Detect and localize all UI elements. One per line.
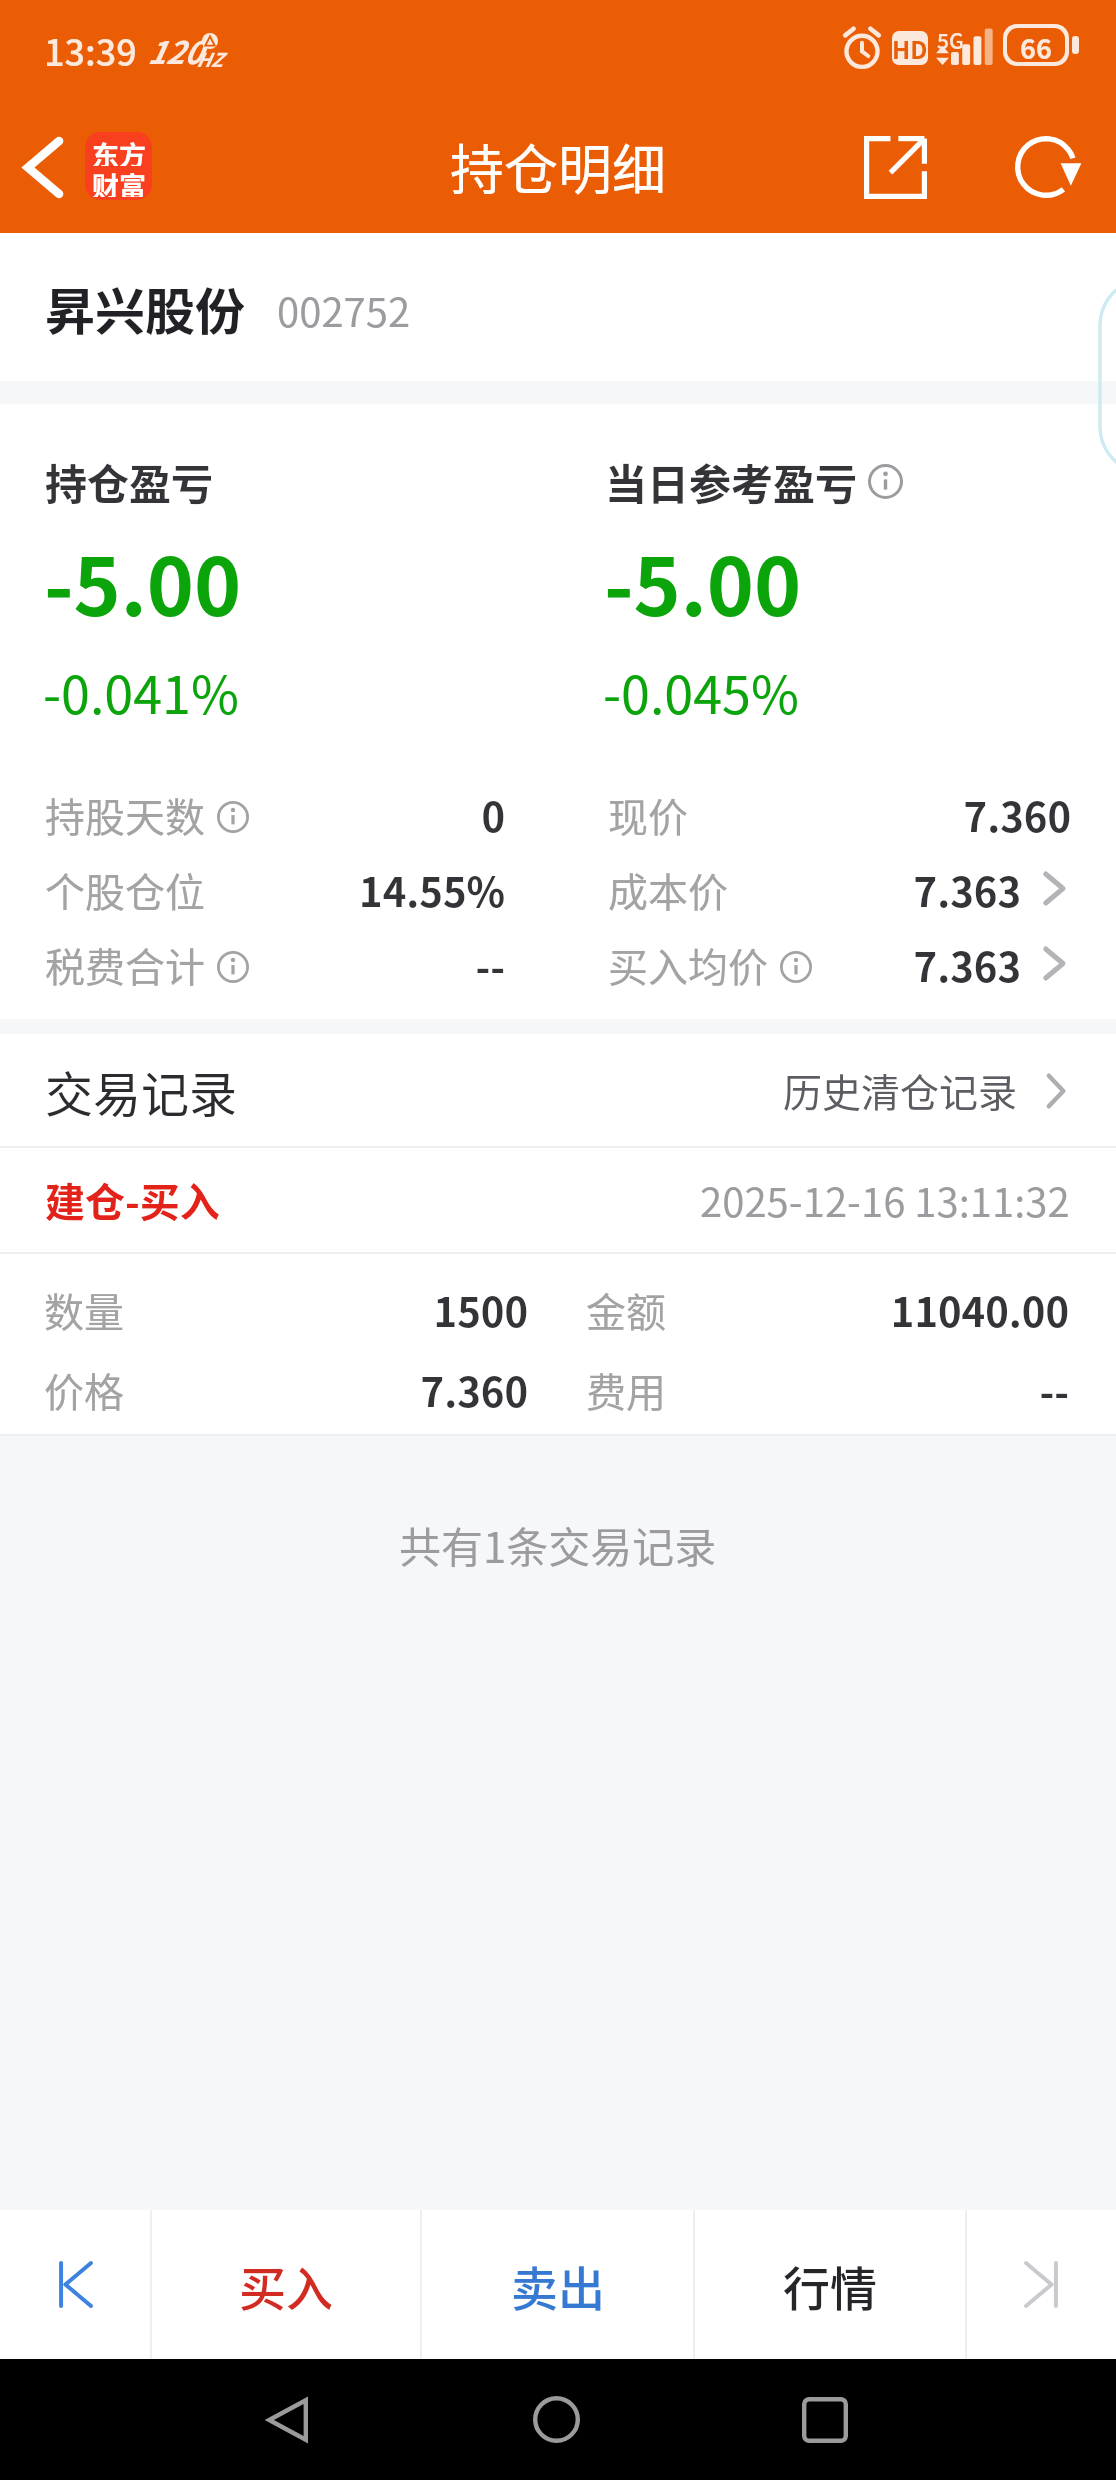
- staticText: 交易记录: [45, 1056, 238, 1126]
- staticText: 5G: [937, 25, 964, 55]
- staticText: 持仓明细: [450, 127, 666, 205]
- staticText: 7.360: [228, 1361, 528, 1419]
- staticText: 14.55%: [205, 861, 505, 919]
- staticText: 税费合计: [45, 936, 205, 994]
- staticText: -5.00: [604, 523, 802, 639]
- staticText: 成本价: [608, 861, 728, 919]
- button[interactable]: Refresh: [983, 104, 1109, 230]
- staticText: 120: [147, 28, 202, 73]
- staticText: 7.363: [721, 861, 1021, 919]
- staticText: 建仓-买入: [45, 1171, 220, 1229]
- staticText: 买入均价: [608, 936, 768, 994]
- staticText: 持仓盈亏: [45, 451, 214, 512]
- staticText: HZ: [196, 45, 223, 73]
- staticText: 个股仓位: [45, 861, 205, 919]
- button[interactable]: 历史清仓记录: [783, 1062, 1066, 1118]
- staticText: 历史清仓记录: [783, 1062, 1018, 1118]
- staticText: 13:39: [44, 24, 137, 76]
- staticText: 持股天数: [45, 786, 205, 844]
- staticText: 买入: [239, 2251, 333, 2319]
- button[interactable]: 行情: [695, 2210, 965, 2359]
- button[interactable]: 成本价: [700, 860, 1116, 920]
- staticText: --: [205, 936, 505, 994]
- staticText: 金额: [586, 1281, 666, 1339]
- button[interactable]: First page: [0, 2210, 150, 2359]
- staticText: 7.363: [721, 936, 1021, 994]
- staticText: -5.00: [44, 523, 242, 639]
- staticText: 1500: [228, 1281, 528, 1339]
- staticText: 财富: [92, 166, 146, 197]
- staticText: 昇兴股份: [45, 272, 245, 344]
- staticText: -0.041%: [43, 654, 239, 729]
- button[interactable]: Recent apps: [765, 2359, 885, 2480]
- staticText: 行情: [783, 2251, 877, 2319]
- button[interactable]: Share: [832, 104, 958, 230]
- button[interactable]: 买入均价: [700, 935, 1116, 995]
- button[interactable]: 卖出: [422, 2210, 693, 2359]
- staticText: 卖出: [511, 2251, 605, 2319]
- staticText: 2025-12-16 13:11:32: [700, 1171, 1070, 1229]
- button[interactable]: Back: [0, 107, 86, 227]
- staticText: 11040.00: [769, 1281, 1069, 1339]
- button[interactable]: 买入: [152, 2210, 420, 2359]
- staticText: 002752: [277, 281, 411, 339]
- staticText: 数量: [44, 1281, 124, 1339]
- button[interactable]: Last page: [967, 2210, 1116, 2359]
- staticText: 当日参考盈亏: [605, 451, 858, 512]
- staticText: 费用: [586, 1361, 666, 1419]
- staticText: 66: [1020, 28, 1052, 62]
- staticText: 价格: [44, 1361, 124, 1419]
- staticText: 0: [205, 786, 505, 844]
- staticText: HD: [892, 31, 928, 65]
- staticText: --: [769, 1361, 1069, 1419]
- staticText: 东方: [92, 135, 146, 166]
- staticText: -0.045%: [603, 654, 799, 729]
- button[interactable]: Home: [496, 2359, 616, 2480]
- staticText: 现价: [608, 786, 688, 844]
- button[interactable]: Back: [227, 2359, 347, 2480]
- staticText: 7.360: [771, 786, 1071, 844]
- staticText: 共有1条交易记录: [399, 1514, 717, 1575]
